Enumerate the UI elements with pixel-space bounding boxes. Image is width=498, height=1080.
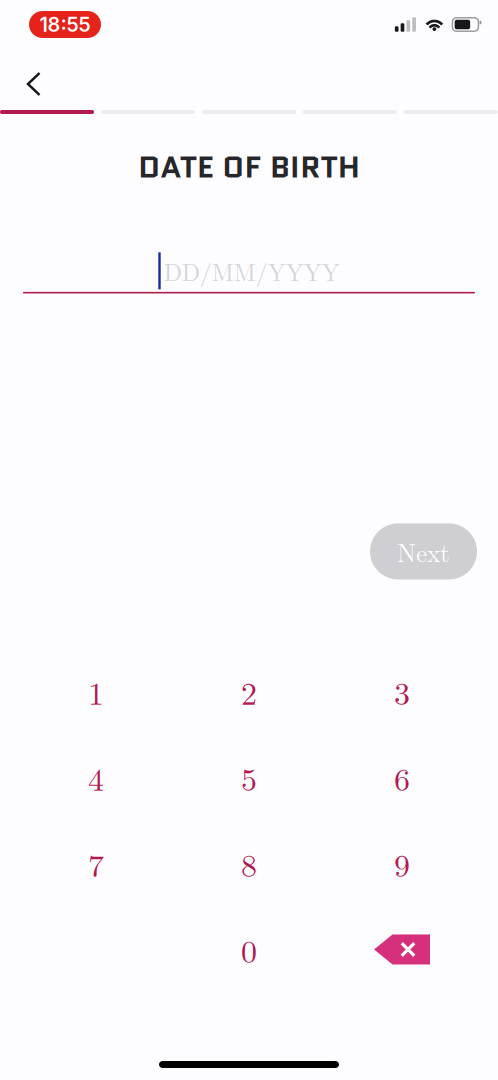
staticText: 18:55 — [39, 12, 90, 37]
button[interactable]: Delete — [325, 906, 478, 992]
staticText: 1 — [88, 669, 104, 714]
button[interactable]: Back — [0, 73, 63, 95]
button[interactable]: 8 — [172, 820, 325, 906]
staticText: 9 — [394, 841, 410, 886]
button[interactable]: 3 — [325, 648, 478, 734]
staticText: 2 — [241, 669, 257, 714]
button[interactable]: 0 — [172, 906, 325, 992]
staticText: 8 — [241, 841, 257, 886]
staticText: Next — [397, 533, 450, 569]
button[interactable]: Next — [370, 523, 477, 579]
staticText: 5 — [241, 755, 257, 800]
staticText: DATE OF BIRTH — [138, 145, 360, 189]
staticText: 6 — [394, 755, 410, 800]
button[interactable]: 9 — [325, 820, 478, 906]
staticText: 0 — [241, 927, 257, 972]
staticText: 3 — [394, 669, 410, 714]
button[interactable]: 7 — [19, 820, 172, 906]
button[interactable]: 4 — [19, 734, 172, 820]
staticText: 7 — [88, 841, 104, 886]
button[interactable]: 1 — [19, 648, 172, 734]
button[interactable]: 2 — [172, 648, 325, 734]
staticText: 4 — [88, 755, 104, 800]
staticText: DD/MM/YYYY — [164, 254, 340, 288]
button[interactable]: 6 — [325, 734, 478, 820]
button[interactable]: 5 — [172, 734, 325, 820]
